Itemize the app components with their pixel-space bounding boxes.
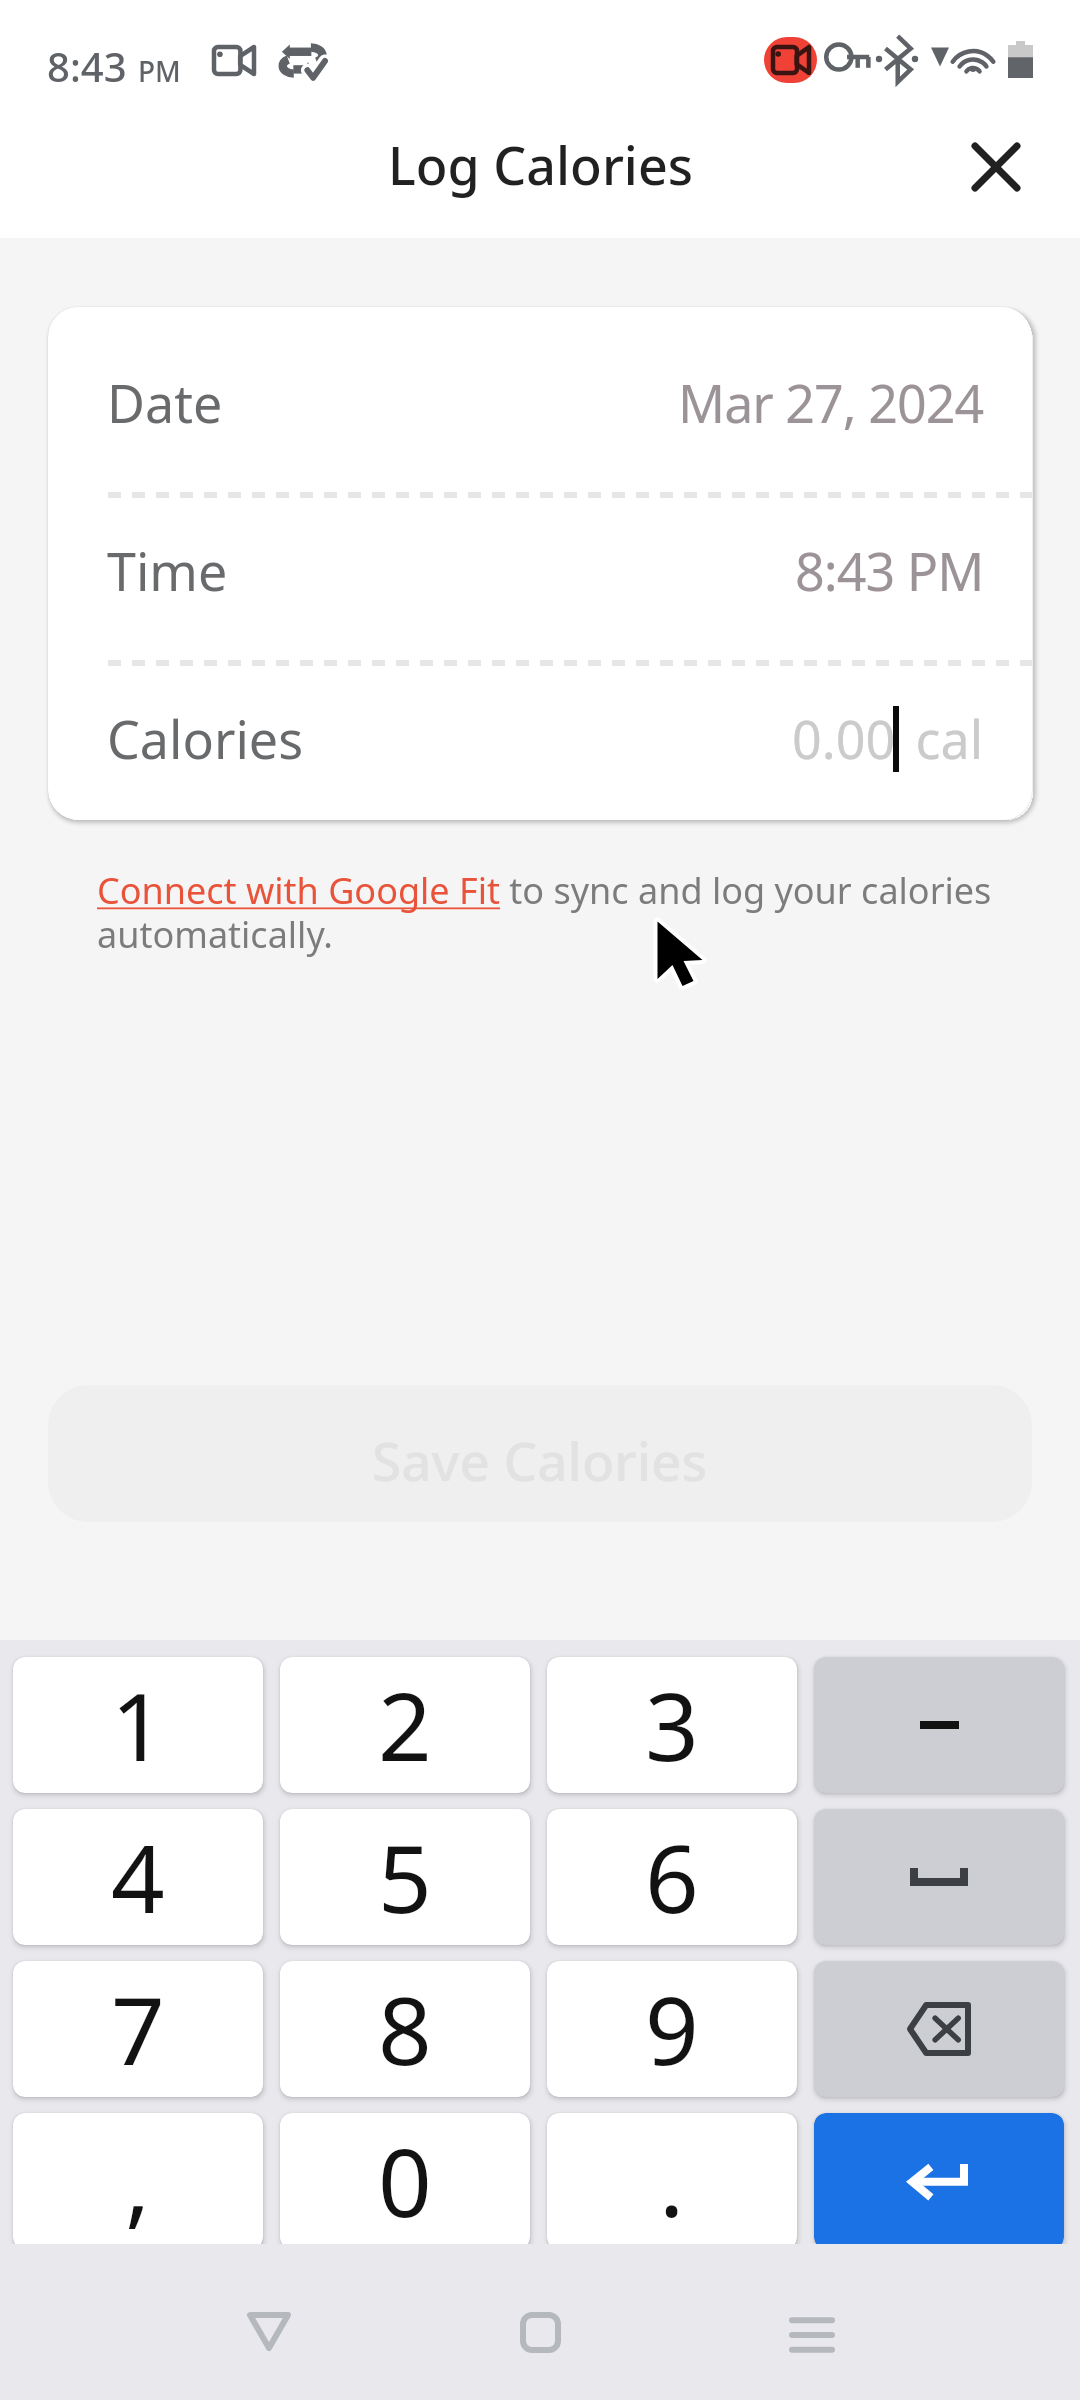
button[interactable]: Minus: [814, 1657, 1064, 1793]
staticText: Save Calories: [372, 1424, 708, 1496]
button[interactable]: Space: [814, 1809, 1064, 1945]
button[interactable]: Recent apps: [752, 2275, 872, 2395]
staticText: Log Calories: [388, 129, 694, 200]
button[interactable]: 6: [547, 1809, 797, 1945]
button[interactable]: .: [547, 2113, 797, 2249]
button[interactable]: Back: [209, 2271, 329, 2391]
button[interactable]: 8: [280, 1961, 530, 2097]
staticText: 3: [645, 1661, 699, 1789]
staticText: 8:43 PM: [795, 535, 984, 606]
staticText: 8:43: [47, 39, 127, 93]
button[interactable]: 4: [13, 1809, 263, 1945]
button[interactable]: Close: [952, 123, 1040, 211]
button[interactable]: 5: [280, 1809, 530, 1945]
staticText: PM: [138, 52, 181, 90]
staticText: 5: [378, 1813, 432, 1941]
staticText: 6: [645, 1813, 699, 1941]
button[interactable]: 0: [280, 2113, 530, 2249]
staticText: ,: [125, 2117, 151, 2245]
staticText: 4: [111, 1813, 165, 1941]
button[interactable]: Home: [480, 2272, 600, 2392]
button[interactable]: Time: [48, 497, 1032, 643]
button[interactable]: ,: [13, 2113, 263, 2249]
button[interactable]: Calories: [48, 663, 1032, 814]
button[interactable]: 7: [13, 1961, 263, 2097]
staticText: 0.00: [792, 703, 896, 774]
staticText: 2: [378, 1661, 432, 1789]
button[interactable]: Date: [48, 307, 1032, 498]
staticText: cal: [902, 703, 984, 774]
staticText: Calories: [107, 703, 304, 774]
button[interactable]: 9: [547, 1961, 797, 2097]
staticText: 9: [645, 1965, 699, 2093]
staticText: 0: [378, 2117, 432, 2245]
button[interactable]: 2: [280, 1657, 530, 1793]
button[interactable]: 3: [547, 1657, 797, 1793]
staticText: 7: [111, 1965, 165, 2093]
button[interactable]: Enter: [814, 2113, 1064, 2249]
button[interactable]: 1: [13, 1657, 263, 1793]
staticText: .: [659, 2117, 685, 2245]
staticText: 1: [111, 1661, 165, 1789]
button[interactable]: Backspace: [814, 1961, 1064, 2097]
staticText: Time: [107, 535, 228, 606]
button[interactable]: Connect with Google Fit to sync and log …: [97, 866, 997, 958]
staticText: Date: [107, 367, 223, 438]
staticText: 8: [378, 1965, 432, 2093]
staticText: Mar 27, 2024: [678, 367, 984, 438]
